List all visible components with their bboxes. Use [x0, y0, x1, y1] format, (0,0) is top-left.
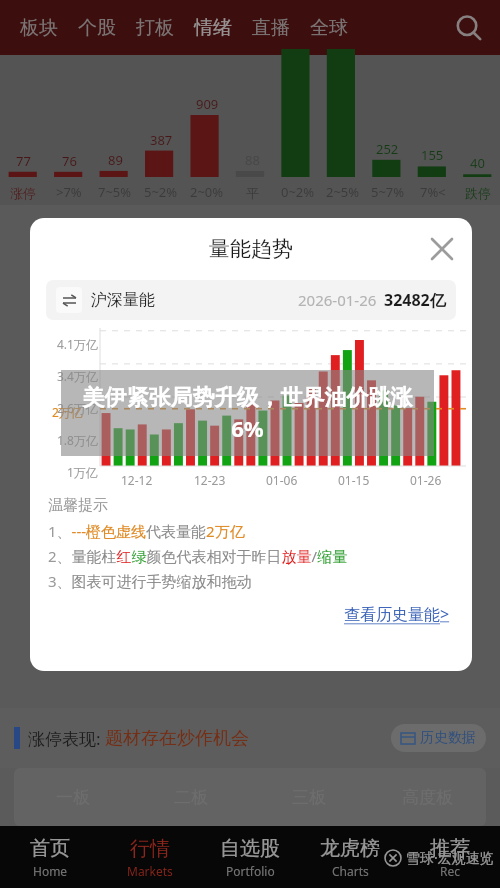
staticText: 涨停表现: [28, 727, 105, 750]
staticText: Charts [332, 863, 369, 879]
staticText: 3、图表可进行手势缩放和拖动 [48, 571, 252, 591]
staticText: 历史数据 [420, 729, 476, 747]
staticText: 2、量能柱红绿颜色代表相对于昨日放量/缩量 [48, 546, 348, 566]
button[interactable]: 行情 [100, 826, 200, 888]
staticText: 板块 [20, 16, 58, 40]
staticText: 2.6万亿 [57, 400, 98, 416]
staticText: >7% [56, 183, 82, 201]
staticText: 首页 [30, 836, 70, 861]
staticText: 1万亿 [67, 464, 98, 480]
staticText: 涨停 [10, 185, 36, 201]
staticText: 5~7% [371, 183, 405, 201]
button[interactable]: 沪深量能 [46, 280, 456, 320]
staticText: 高度板 [402, 787, 453, 808]
staticText: 一板 [56, 787, 90, 808]
staticText: 01-15 [338, 472, 370, 488]
button[interactable]: 板块 [14, 16, 64, 40]
staticText: 自选股 [220, 836, 280, 861]
staticText: 平 [246, 185, 259, 201]
staticText: 2万亿 [52, 404, 83, 420]
staticText: 4.1万亿 [57, 336, 98, 352]
button[interactable]: 推荐 [400, 826, 500, 888]
staticText: 155 [421, 146, 444, 164]
staticText: 题材存在炒作机会 [105, 727, 249, 750]
staticText: Rec [440, 863, 460, 879]
staticText: 打板 [136, 16, 174, 40]
staticText: 89 [108, 151, 123, 169]
staticText: 美伊紧张局势升级，世界油价跳涨6% [71, 384, 424, 443]
staticText: 40 [470, 154, 485, 172]
staticText: 情绪 [194, 16, 232, 40]
staticText: 3.4万亿 [57, 368, 98, 384]
staticText: 7~5% [98, 183, 132, 201]
staticText: 个股 [78, 16, 116, 40]
staticText: Markets [127, 863, 173, 879]
staticText: 三板 [292, 787, 326, 808]
button[interactable]: 打板 [130, 16, 180, 40]
staticText: 01-06 [266, 472, 298, 488]
staticText: Portfolio [226, 863, 275, 879]
staticText: 387 [150, 131, 173, 149]
staticText: 跌停 [465, 185, 491, 201]
staticText: 12-23 [194, 472, 226, 488]
button[interactable]: 全球 [304, 16, 354, 40]
staticText: 5~2% [144, 183, 178, 201]
button[interactable]: Close [424, 231, 460, 267]
button[interactable]: 情绪 [188, 16, 238, 40]
staticText: 推荐 [430, 836, 470, 861]
staticText: 1、---橙色虚线代表量能2万亿 [48, 521, 245, 541]
button[interactable]: 历史数据 [391, 724, 486, 752]
staticText: 0~2% [281, 183, 315, 201]
staticText: 909 [196, 95, 219, 113]
button[interactable]: 查看历史量能> [340, 599, 454, 629]
staticText: 二板 [174, 787, 208, 808]
staticText: 12-12 [121, 472, 153, 488]
button[interactable]: 直播 [246, 16, 296, 40]
staticText: Home [33, 863, 68, 879]
staticText: 行情 [130, 836, 170, 861]
staticText: 32482亿 [384, 289, 446, 311]
staticText: 2~0% [190, 183, 224, 201]
staticText: 252 [376, 140, 399, 158]
staticText: 沪深量能 [91, 290, 155, 310]
staticText: 77 [16, 152, 31, 170]
staticText: 7%< [420, 183, 446, 201]
staticText: 全球 [310, 16, 348, 40]
staticText: 2~5% [326, 183, 360, 201]
button[interactable]: 个股 [72, 16, 122, 40]
staticText: 直播 [252, 16, 290, 40]
staticText: 1.8万亿 [57, 432, 98, 448]
button[interactable]: 自选股 [200, 826, 300, 888]
staticText: 龙虎榜 [320, 836, 380, 861]
staticText: 2026-01-26 [298, 290, 377, 310]
staticText: 温馨提示 [48, 496, 108, 515]
staticText: 76 [62, 152, 77, 170]
staticText: 量能趋势 [209, 236, 293, 262]
button[interactable]: 首页 [0, 826, 100, 888]
staticText: 01-26 [410, 472, 442, 488]
button[interactable]: Search [452, 11, 486, 45]
staticText: 查看历史量能> [344, 603, 450, 625]
staticText: 88 [245, 151, 260, 169]
staticText: 雪球·宏观速览 [406, 848, 494, 867]
button[interactable]: 龙虎榜 [300, 826, 400, 888]
